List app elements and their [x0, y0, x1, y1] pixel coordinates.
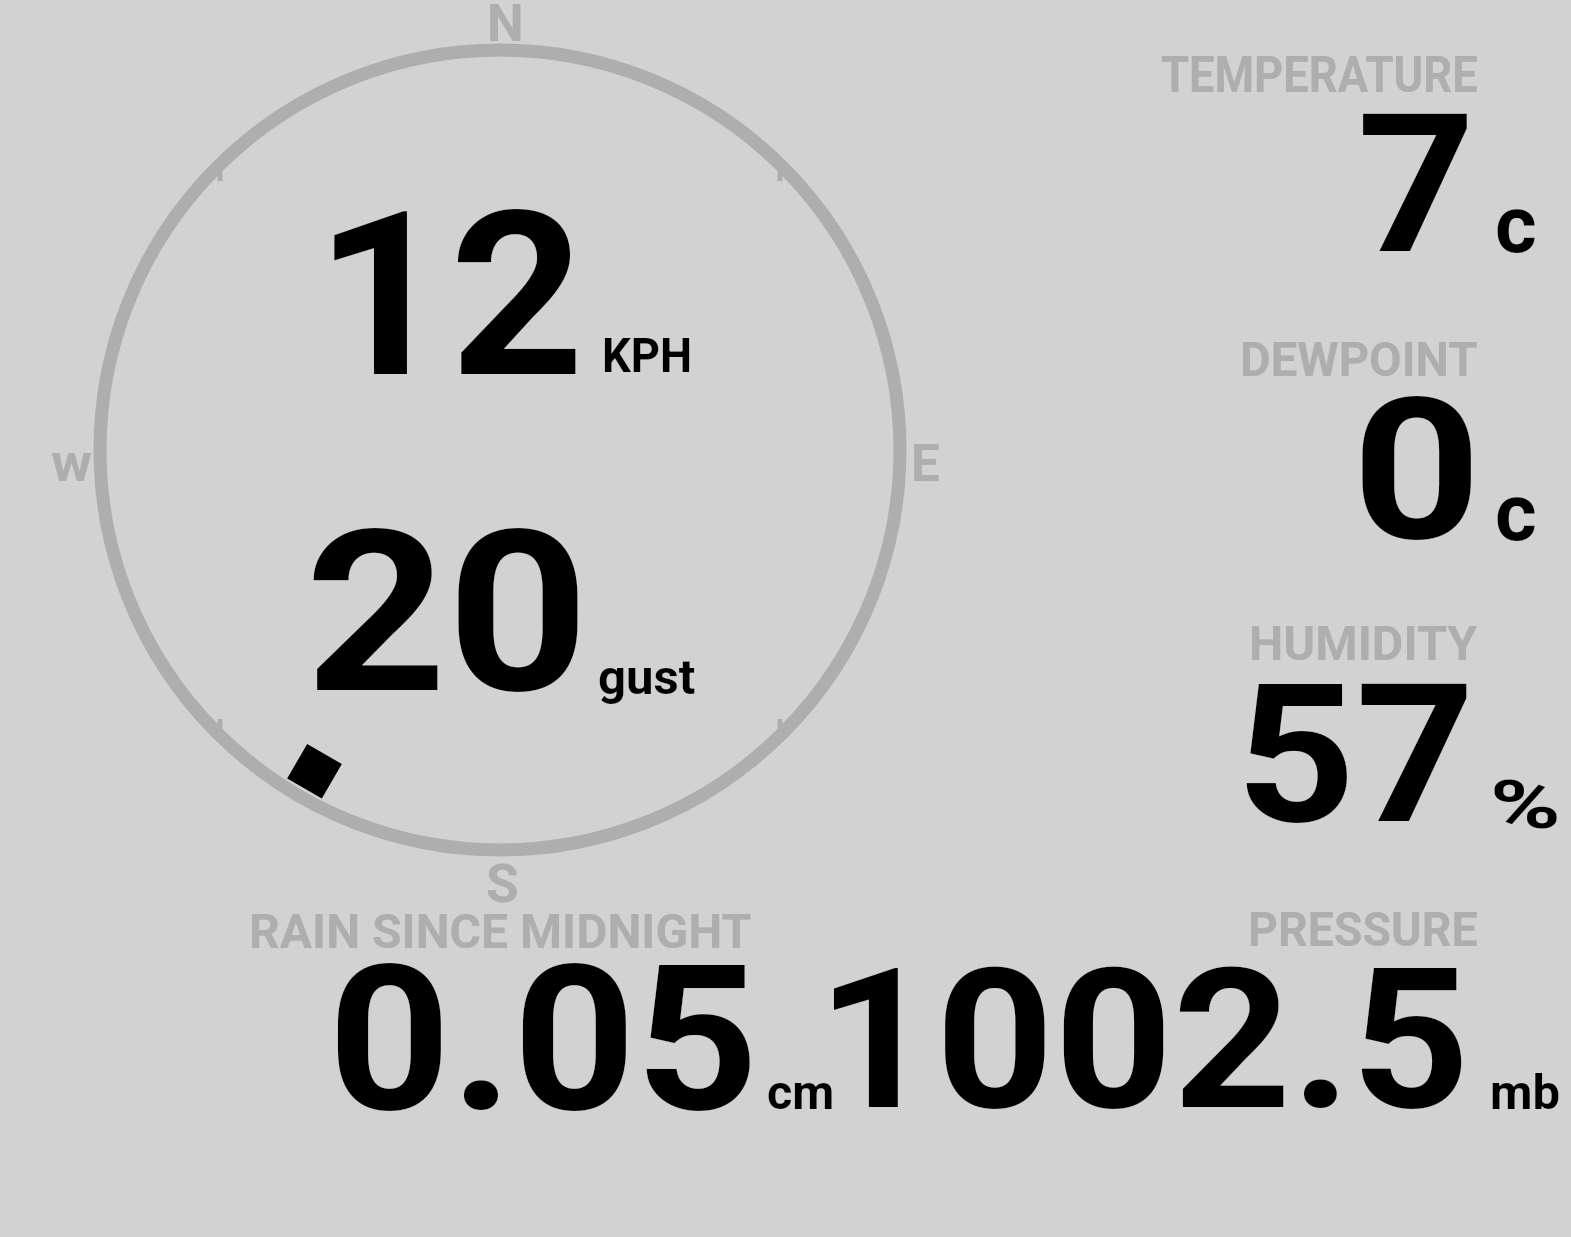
staticText: c [1495, 178, 1537, 272]
staticText: PRESSURE [1248, 902, 1478, 958]
button[interactable]: TEMPERATURE [1000, 20, 1555, 290]
staticText: 57 [1236, 642, 1476, 868]
staticText: N [487, 0, 524, 54]
staticText: 0 [1352, 356, 1482, 586]
staticText: TEMPERATURE [1161, 46, 1478, 105]
staticText: E [911, 434, 940, 494]
staticText: 12 [315, 162, 585, 429]
staticText: RAIN SINCE MIDNIGHT [249, 904, 752, 960]
button[interactable]: HUMIDITY [1000, 590, 1555, 855]
button[interactable]: RAIN SINCE MIDNIGHT [230, 890, 830, 1130]
staticText: 20 [305, 481, 590, 745]
staticText: 1002.5 [817, 926, 1470, 1155]
staticText: HUMIDITY [1249, 615, 1478, 672]
staticText: gust [598, 649, 696, 705]
staticText: S [486, 853, 519, 915]
staticText: c [1495, 466, 1537, 560]
staticText: mb [1490, 1064, 1561, 1121]
staticText: % [1490, 767, 1561, 844]
staticText: cm [767, 1064, 834, 1121]
button[interactable]: PRESSURE [810, 890, 1560, 1130]
button[interactable]: Wind direction compass [40, 0, 960, 910]
staticText: 0.05 [328, 921, 759, 1159]
staticText: w [51, 432, 92, 494]
button[interactable]: DEWPOINT [1000, 305, 1555, 575]
staticText: 7 [1357, 72, 1476, 298]
staticText: KPH [602, 327, 693, 383]
staticText: DEWPOINT [1240, 332, 1478, 388]
